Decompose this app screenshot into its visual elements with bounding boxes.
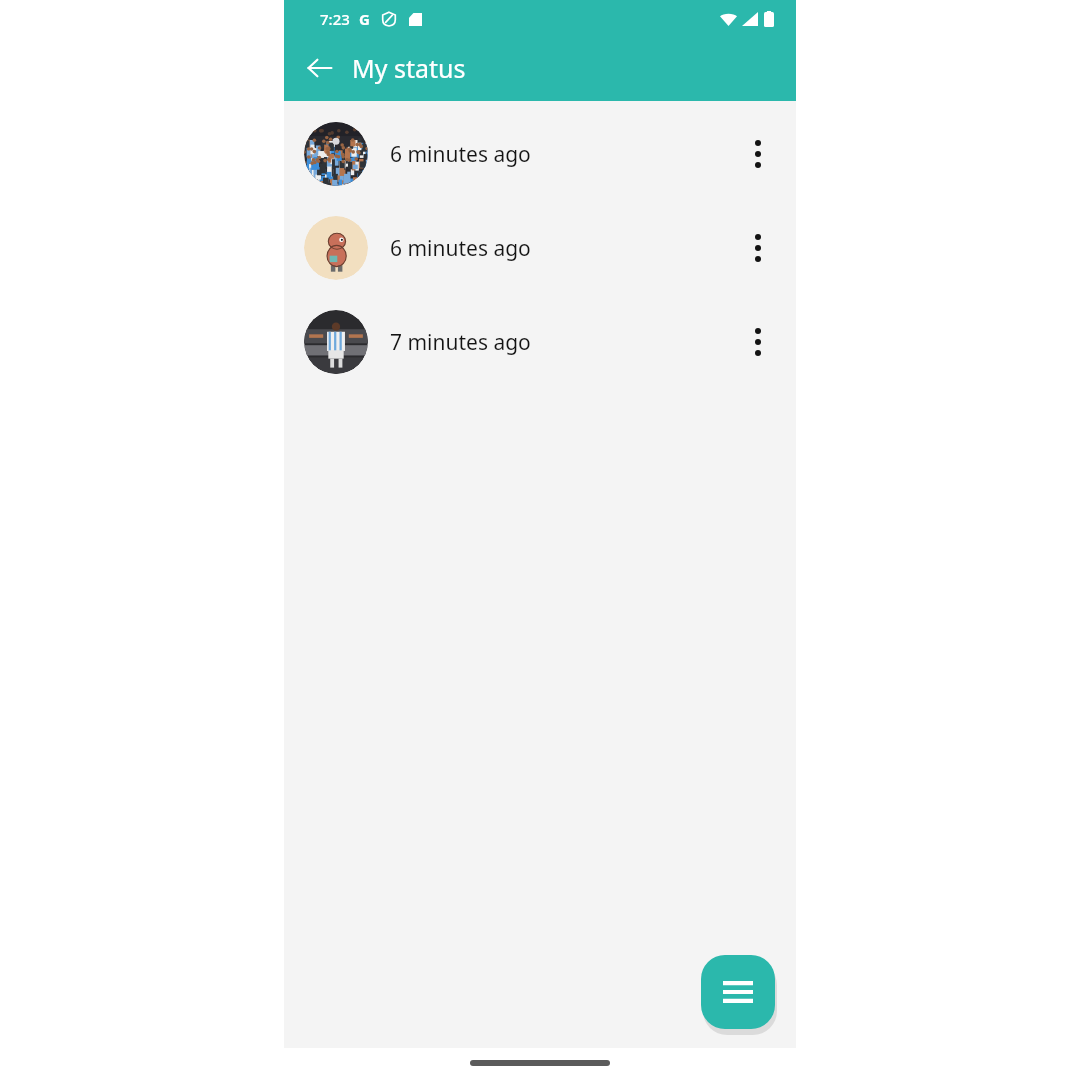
staticText: 7 minutes ago <box>390 328 531 357</box>
staticText: 6 minutes ago <box>390 234 531 263</box>
button[interactable]: 7 minutes ago <box>284 295 796 389</box>
button[interactable]: Menu <box>701 955 775 1029</box>
staticText: 7:23 <box>320 9 350 29</box>
staticText: G <box>359 9 370 29</box>
staticText: My status <box>352 51 466 85</box>
button[interactable]: More options <box>734 224 782 272</box>
button[interactable]: 6 minutes ago <box>284 201 796 295</box>
button[interactable]: More options <box>734 130 782 178</box>
button[interactable]: Back <box>296 44 344 92</box>
button[interactable]: 6 minutes ago <box>284 107 796 201</box>
button[interactable]: More options <box>734 318 782 366</box>
staticText: 6 minutes ago <box>390 140 531 169</box>
